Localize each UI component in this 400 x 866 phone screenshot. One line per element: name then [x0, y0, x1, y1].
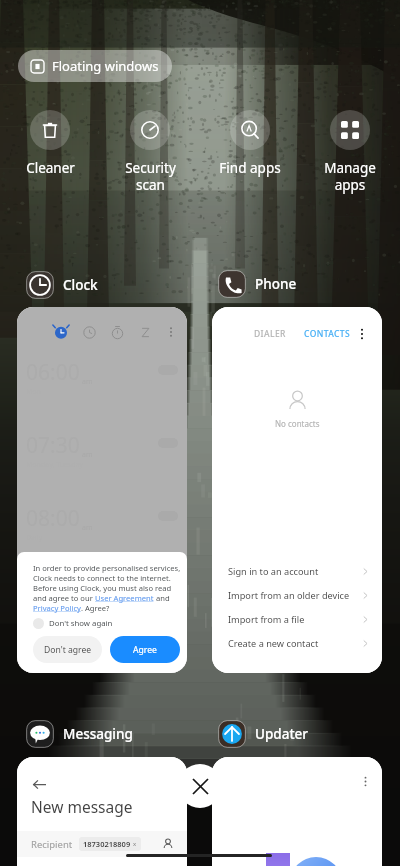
staticText: User Agreement — [95, 593, 154, 603]
button[interactable]: Import from a file — [212, 607, 382, 631]
staticText: . Agree? — [81, 603, 110, 613]
staticText: Don't agree — [44, 644, 92, 656]
button[interactable]: Close all — [178, 764, 222, 808]
staticText: Import from an older device — [228, 589, 350, 602]
button[interactable]: Phone — [217, 269, 297, 299]
staticText: Sign in to an account — [228, 565, 319, 578]
staticText: No contacts — [275, 418, 320, 429]
button[interactable]: Don't show again — [33, 618, 113, 629]
button[interactable]: Updater — [217, 719, 309, 749]
staticText: x — [133, 840, 137, 848]
button[interactable]: Create a new contact — [212, 631, 382, 655]
button[interactable]: More options — [212, 757, 382, 866]
staticText: In order to provide personalised service… — [33, 563, 181, 573]
staticText: 18730218809 — [83, 839, 131, 849]
button[interactable]: Floating windows — [18, 50, 172, 82]
button[interactable]: Sign in to an account — [212, 559, 382, 583]
button[interactable]: Import from an older device — [212, 583, 382, 607]
staticText: Before using Clock, you must also read — [33, 583, 172, 593]
staticText: DIALER — [254, 328, 286, 340]
button[interactable]: Cleaner — [0, 110, 100, 177]
staticText: New message — [31, 796, 133, 817]
button[interactable]: More options — [357, 773, 373, 789]
button[interactable]: Agree — [110, 636, 180, 663]
staticText: Floating windows — [52, 57, 159, 75]
staticText: Updater — [255, 725, 309, 743]
button[interactable]: Find apps — [200, 110, 300, 177]
staticText: Cleaner — [26, 159, 75, 177]
staticText: Privacy Policy — [33, 603, 81, 613]
button[interactable]: More options — [354, 326, 370, 342]
staticText: and — [154, 593, 170, 603]
staticText: Clock needs to connect to the internet. — [33, 573, 171, 583]
staticText: CONTACTS — [304, 328, 351, 340]
staticText: Create a new contact — [228, 637, 319, 650]
staticText: Phone — [255, 275, 297, 293]
button[interactable]: Manage apps — [300, 110, 400, 194]
button[interactable]: Alarm — [17, 307, 187, 673]
button[interactable]: Messaging — [25, 719, 133, 749]
button[interactable]: DIALER — [212, 307, 382, 673]
staticText: Manage apps — [324, 159, 376, 194]
button[interactable]: Back — [17, 757, 187, 866]
staticText: and agree to our — [33, 593, 95, 603]
staticText: Find apps — [219, 159, 281, 177]
button[interactable]: Clock — [25, 270, 98, 300]
button[interactable]: Alarm — [54, 325, 68, 339]
staticText: Clock — [63, 276, 98, 294]
staticText: Don't show again — [49, 618, 113, 629]
staticText: Agree — [133, 644, 157, 656]
button[interactable]: Security scan — [100, 110, 200, 194]
staticText: Security scan — [125, 159, 176, 194]
staticText: Recipient — [31, 838, 73, 851]
staticText: Import from a file — [228, 613, 305, 626]
staticText: Messaging — [63, 725, 133, 743]
button[interactable]: Back — [30, 775, 48, 793]
button[interactable]: Don't agree — [33, 636, 102, 663]
